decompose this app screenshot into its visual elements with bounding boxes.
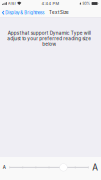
- staticText: 4:44 PM: [41, 1, 59, 6]
- staticText: AT&T: [8, 1, 16, 6]
- staticText: A: [92, 162, 98, 172]
- button[interactable]: Text size: [0, 157, 101, 180]
- staticText: Display & Brightness: [5, 10, 44, 15]
- staticText: 93%: [83, 1, 91, 6]
- button[interactable]: Display & Brightness: [0, 8, 46, 17]
- staticText: Text Size: [49, 10, 69, 15]
- staticText: A: [3, 165, 6, 170]
- staticText: Apps that support Dynamic Type will adju…: [7, 30, 91, 47]
